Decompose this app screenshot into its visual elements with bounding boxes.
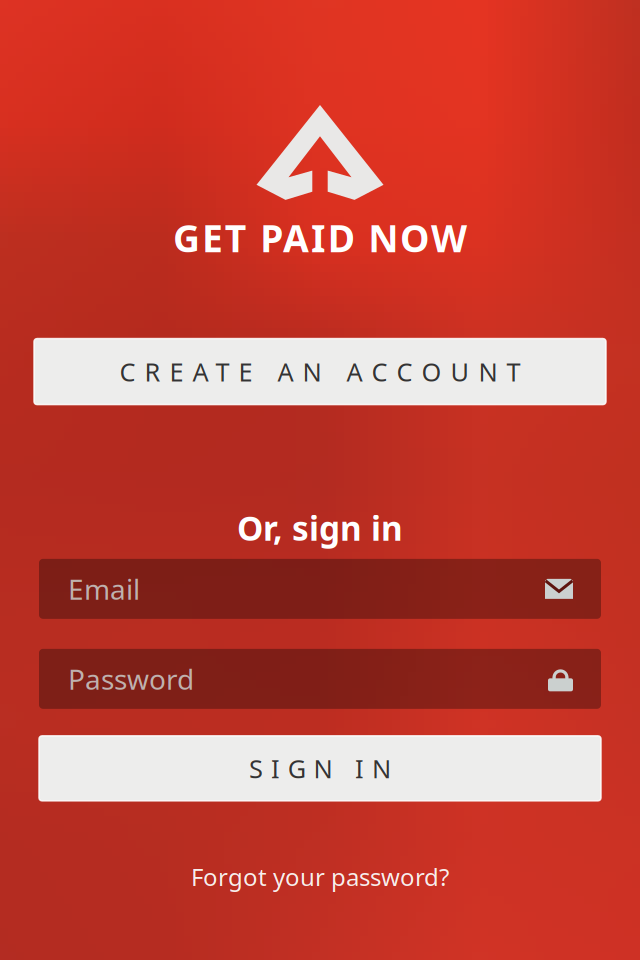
button[interactable]: CREATE AN ACCOUNT [34, 339, 606, 405]
staticText: Email [68, 570, 140, 607]
button[interactable]: Email [39, 559, 601, 619]
staticText: SIGN IN [249, 751, 391, 785]
button[interactable]: SIGN IN [39, 736, 601, 801]
staticText: Or, sign in [237, 506, 403, 550]
staticText: Forgot your password? [191, 861, 449, 893]
staticText: GET PAID NOW [173, 213, 467, 263]
staticText: Password [68, 660, 194, 697]
button[interactable]: Forgot your password? [191, 861, 449, 893]
button[interactable]: Password [39, 649, 601, 709]
staticText: CREATE AN ACCOUNT [119, 355, 520, 388]
